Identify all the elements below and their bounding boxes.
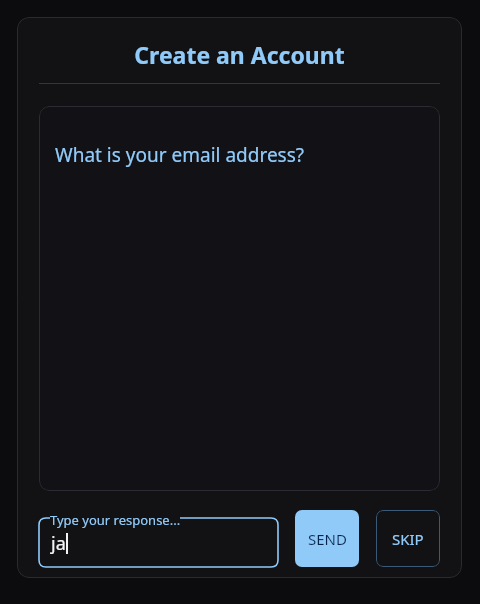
staticText: Create an Account: [17, 39, 462, 70]
staticText: What is your email address?: [55, 142, 305, 168]
staticText: ja: [51, 531, 66, 556]
staticText: Type your response...: [50, 511, 181, 529]
button[interactable]: SKIP: [376, 510, 440, 567]
button[interactable]: SEND: [295, 510, 359, 567]
staticText: SEND: [308, 529, 347, 549]
staticText: SKIP: [392, 529, 424, 549]
button[interactable]: Type your response text field: [39, 510, 278, 567]
